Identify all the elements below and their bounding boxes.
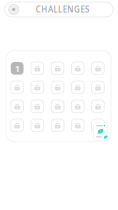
button[interactable]: Locked challenge [92,62,104,75]
button[interactable]: Locked challenge [51,81,64,94]
button[interactable]: Locked challenge [71,81,84,94]
button[interactable]: Locked challenge [92,100,104,113]
button[interactable]: Locked challenge [31,81,44,94]
button[interactable]: Locked challenge [51,100,64,113]
button[interactable]: Locked challenge [92,119,104,132]
button[interactable]: Locked challenge [31,100,44,113]
button[interactable]: Locked challenge [31,119,44,132]
button[interactable]: Locked challenge [71,62,84,75]
staticText: 1 [15,62,20,75]
button[interactable]: Locked challenge [31,62,44,75]
button[interactable]: 1 [11,62,23,75]
staticText: CHALLENGES [36,4,89,15]
button[interactable]: Locked challenge [11,81,23,94]
button[interactable]: Locked challenge [51,62,64,75]
button[interactable]: Locked challenge [92,81,104,94]
button[interactable]: Locked challenge [51,119,64,132]
button[interactable]: CHALLENGES [5,2,113,17]
button[interactable]: Locked challenge [11,100,23,113]
button[interactable]: Locked challenge [71,119,84,132]
button[interactable]: Locked challenge [71,100,84,113]
button[interactable]: Locked challenge [11,119,23,132]
